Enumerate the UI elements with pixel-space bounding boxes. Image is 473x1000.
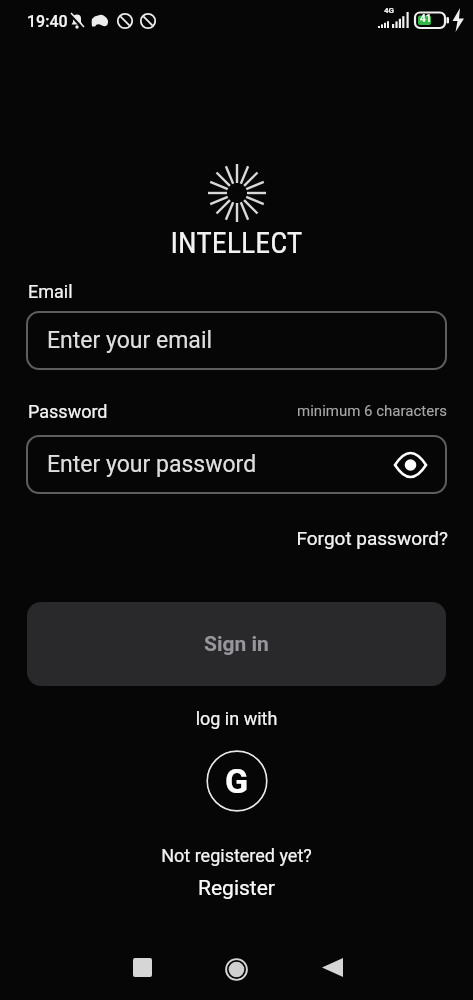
staticText: log in with [0,708,473,729]
button[interactable] [322,958,343,977]
staticText: Not registered yet? [0,845,473,866]
button[interactable]: Enter your email [26,311,447,370]
staticText: Enter your password [47,451,257,478]
button[interactable]: G [206,750,268,812]
staticText: 19:40 [27,12,68,31]
button[interactable] [133,958,152,977]
button[interactable]: Enter your password [26,435,447,494]
staticText: Password [28,401,108,422]
staticText: 41 [420,13,432,25]
staticText: Enter your email [47,327,213,354]
staticText: 4G [384,6,395,15]
staticText: INTELLECT [0,225,473,260]
button[interactable]: Forgot password? [0,527,448,549]
staticText: G [225,761,249,801]
button[interactable]: Sign in [27,602,446,686]
staticText: minimum 6 characters [0,402,447,420]
button[interactable] [394,452,427,478]
staticText: Sign in [204,632,269,657]
button[interactable] [225,958,248,981]
button[interactable]: Register [198,876,275,901]
staticText: Email [28,281,73,302]
